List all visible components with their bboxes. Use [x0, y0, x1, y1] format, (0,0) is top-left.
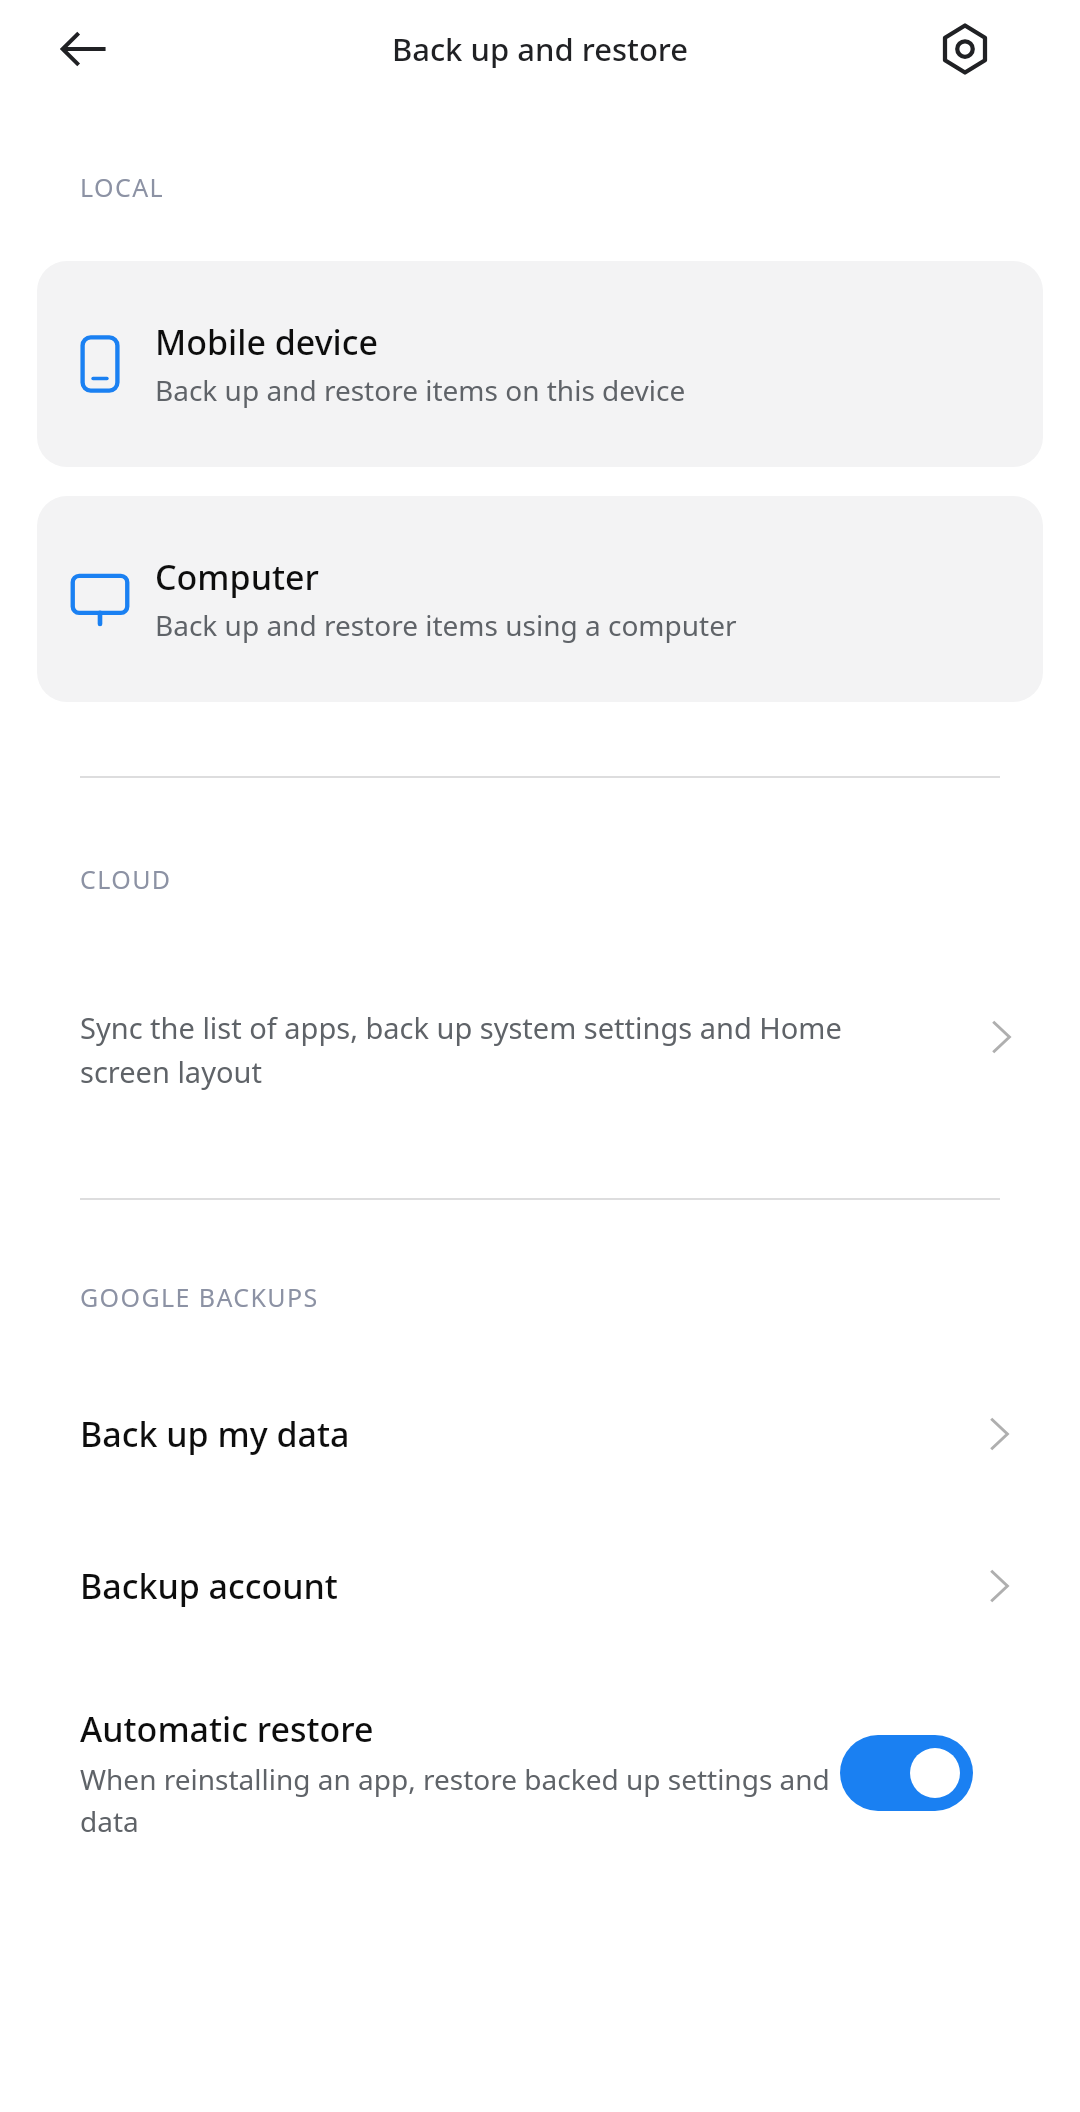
staticText: Automatic restore [80, 1706, 374, 1752]
button[interactable]: Automatic restore [840, 1735, 973, 1811]
staticText: Back up my data [80, 1411, 350, 1457]
button[interactable]: Sync the list of apps, back up system se… [0, 1008, 1080, 1126]
staticText: Mobile device [155, 319, 379, 365]
staticText: Back up and restore items on this device [155, 371, 686, 409]
staticText: CLOUD [80, 862, 172, 896]
staticText: Back up and restore items using a comput… [155, 606, 737, 644]
staticText: Back up and restore [0, 28, 1080, 70]
button[interactable]: Settings [922, 6, 1008, 92]
staticText: GOOGLE BACKUPS [80, 1280, 319, 1314]
button[interactable]: Back up my data [0, 1394, 1080, 1474]
button[interactable]: Mobile device [37, 261, 1043, 467]
staticText: Computer [155, 554, 319, 600]
button[interactable]: Automatic restore [0, 1698, 1080, 1848]
staticText: LOCAL [80, 170, 165, 204]
staticText: Backup account [80, 1563, 338, 1609]
button[interactable]: Back [40, 6, 126, 92]
staticText: Sync the list of apps, back up system se… [80, 1008, 910, 1091]
button[interactable]: Backup account [0, 1546, 1080, 1626]
staticText: When reinstalling an app, restore backed… [80, 1760, 840, 1840]
button[interactable]: Computer [37, 496, 1043, 702]
